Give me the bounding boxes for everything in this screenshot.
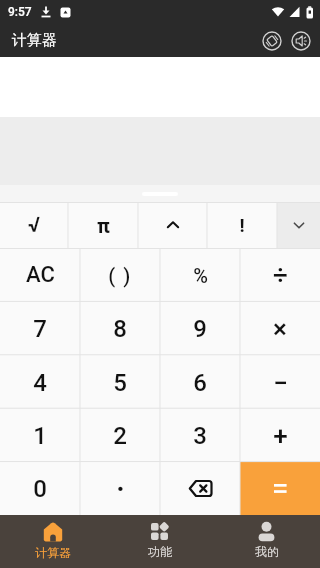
staticText: −: [273, 368, 288, 398]
button[interactable]: !: [207, 202, 277, 248]
button[interactable]: ×: [240, 302, 320, 356]
staticText: ÷: [273, 260, 288, 290]
button[interactable]: 9: [160, 302, 240, 356]
button[interactable]: 5: [80, 356, 160, 409]
button[interactable]: √: [0, 202, 68, 248]
staticText: 计算器: [12, 31, 57, 50]
staticText: 1: [33, 422, 47, 450]
button[interactable]: 0: [0, 462, 80, 515]
button[interactable]: π: [68, 202, 138, 248]
staticText: √: [28, 213, 40, 238]
staticText: AC: [26, 262, 55, 288]
button[interactable]: [240, 462, 320, 515]
button[interactable]: −: [240, 356, 320, 409]
staticText: 9: [193, 315, 207, 343]
staticText: 9:57: [8, 5, 32, 19]
button[interactable]: ÷: [240, 248, 320, 302]
button[interactable]: [290, 30, 312, 52]
button[interactable]: ·: [80, 462, 160, 515]
button[interactable]: +: [240, 409, 320, 462]
button[interactable]: AC: [0, 248, 80, 302]
staticText: !: [239, 214, 245, 236]
button[interactable]: 3: [160, 409, 240, 462]
staticText: %: [193, 264, 208, 287]
staticText: 4: [33, 369, 47, 397]
staticText: 3: [193, 422, 207, 450]
button[interactable]: 功能: [106, 515, 213, 568]
button[interactable]: 7: [0, 302, 80, 356]
staticText: ( ): [108, 264, 132, 287]
button[interactable]: 我的: [213, 515, 320, 568]
staticText: 功能: [148, 544, 172, 559]
button[interactable]: [261, 30, 283, 52]
staticText: 5: [113, 369, 127, 397]
button[interactable]: ( ): [80, 248, 160, 302]
button[interactable]: 2: [80, 409, 160, 462]
staticText: +: [273, 421, 288, 451]
button[interactable]: 1: [0, 409, 80, 462]
staticText: 我的: [255, 544, 279, 559]
staticText: 6: [193, 369, 207, 397]
button[interactable]: 计算器: [0, 515, 106, 568]
button[interactable]: [277, 202, 320, 248]
staticText: 8: [113, 315, 127, 343]
staticText: 7: [33, 315, 47, 343]
staticText: ×: [273, 314, 287, 344]
staticText: ·: [116, 472, 125, 505]
staticText: 2: [113, 422, 127, 450]
button[interactable]: [138, 202, 207, 248]
staticText: 计算器: [35, 545, 71, 560]
button[interactable]: 4: [0, 356, 80, 409]
staticText: 0: [33, 475, 47, 503]
button[interactable]: 8: [80, 302, 160, 356]
button[interactable]: 6: [160, 356, 240, 409]
button[interactable]: %: [160, 248, 240, 302]
staticText: π: [97, 214, 110, 237]
button[interactable]: [160, 462, 240, 515]
